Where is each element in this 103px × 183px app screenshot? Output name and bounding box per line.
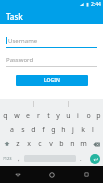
staticText: Password [6,56,34,64]
button[interactable]: e [22,109,33,123]
staticText: i [77,111,79,121]
button[interactable]: Back [0,166,35,183]
button[interactable]: o [83,109,93,123]
button[interactable]: i [73,109,83,123]
button[interactable]: . [76,151,86,166]
staticText: v [49,139,53,149]
button[interactable]: q [0,109,11,123]
button[interactable]: p [93,109,103,123]
staticText: ?123 [3,156,12,161]
staticText: u [66,111,71,121]
staticText: . [80,155,82,163]
button[interactable]: ?123 [0,151,14,166]
staticText: Task [6,11,23,22]
staticText: f [42,125,45,135]
button[interactable]: k [78,123,88,137]
staticText: l [92,125,94,135]
staticText: , [18,155,20,163]
button[interactable]: d [28,123,38,137]
staticText: t [47,111,50,121]
staticText: q [3,111,8,121]
button[interactable]: c [34,137,45,151]
button[interactable]: g [48,123,58,137]
button[interactable]: Shift [0,137,13,151]
staticText: o [86,111,91,121]
staticText: s [21,125,25,135]
staticText: m [80,139,87,149]
staticText: h [61,125,66,135]
button[interactable]: Username [6,37,97,48]
button[interactable]: f [38,123,48,137]
button[interactable]: , [14,151,24,166]
staticText: b [59,139,64,149]
staticText: Username [8,37,38,45]
button[interactable]: a [6,123,17,137]
button[interactable]: Backspace [89,137,103,151]
button[interactable]: b [56,137,67,151]
button[interactable]: n [67,137,78,151]
button[interactable]: j [68,123,78,137]
staticText: z [16,139,20,149]
button[interactable]: w [11,109,22,123]
staticText: y [56,111,60,121]
button[interactable]: y [53,109,63,123]
button[interactable]: t [43,109,53,123]
staticText: 2:44 [91,1,101,8]
button[interactable]: Password [6,56,97,67]
staticText: a [10,125,14,135]
staticText: n [70,139,75,149]
button[interactable]: z [13,137,23,151]
staticText: j [72,125,74,135]
button[interactable]: l [88,123,98,137]
staticText: e [26,111,30,121]
button[interactable]: LOGIN [16,75,88,86]
button[interactable]: r [33,109,43,123]
staticText: g [51,125,56,135]
staticText: LOGIN [44,77,60,84]
button[interactable]: x [23,137,34,151]
button[interactable]: v [45,137,56,151]
button[interactable]: m [78,137,89,151]
button[interactable]: u [63,109,73,123]
button[interactable]: Recents [69,166,103,183]
staticText: w [14,111,20,121]
button[interactable]: s [17,123,28,137]
staticText: k [81,125,85,135]
staticText: c [38,139,42,149]
staticText: d [31,125,36,135]
button[interactable]: Enter [86,151,103,166]
button[interactable]: h [58,123,68,137]
button[interactable]: Home [35,166,69,183]
staticText: x [27,139,31,149]
staticText: p [96,111,101,121]
staticText: r [37,111,40,121]
